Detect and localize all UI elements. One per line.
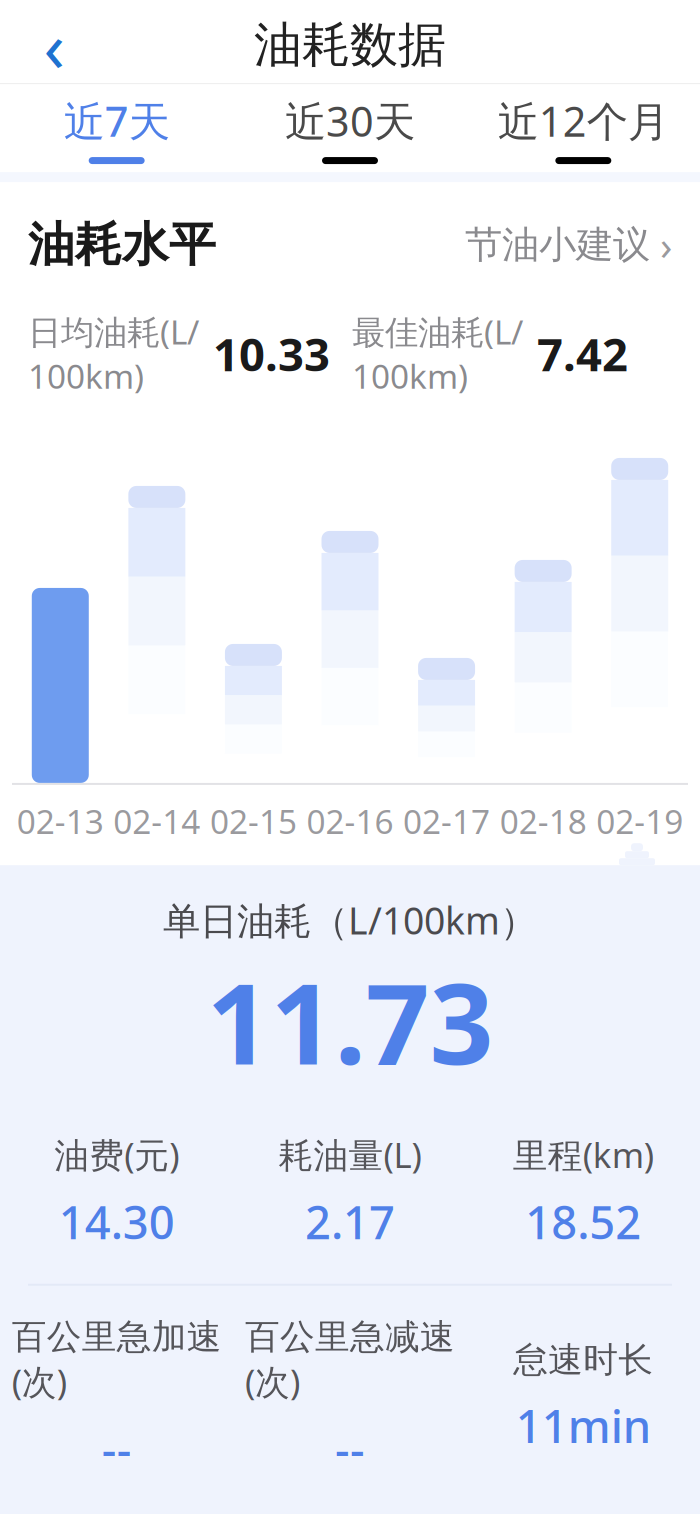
staticText: -- (335, 1418, 365, 1479)
staticText: -- (102, 1418, 132, 1479)
staticText: 11.73 (206, 947, 493, 1095)
staticText: 02-15 (210, 799, 297, 843)
staticText: 7.42 (537, 324, 628, 384)
staticText: 近7天 (64, 93, 170, 148)
button[interactable]: 近12个月 (467, 84, 700, 172)
staticText: 里程(km) (513, 1131, 654, 1177)
button[interactable]: 近30天 (233, 84, 467, 172)
staticText: 近12个月 (498, 93, 669, 148)
button[interactable]: 节油小建议 (465, 218, 672, 271)
staticText: 02-19 (596, 799, 683, 843)
staticText: 最佳油耗(L/100km) (352, 309, 523, 398)
staticText: 14.30 (59, 1191, 175, 1252)
staticText: 02-16 (306, 799, 393, 843)
staticText: 02-13 (17, 799, 104, 843)
staticText: 02-14 (113, 799, 200, 843)
staticText: 18.52 (525, 1191, 641, 1252)
staticText: 11min (516, 1395, 651, 1455)
staticText: 油耗水平 (28, 216, 216, 273)
staticText: 节油小建议 (465, 222, 650, 268)
staticText: 怠速时长 (513, 1339, 653, 1381)
staticText: 耗油量(L) (278, 1131, 421, 1177)
staticText: 单日油耗（L/100km） (163, 895, 537, 945)
button[interactable]: Back (14, 7, 94, 83)
staticText: 百公里急减速(次) (245, 1316, 455, 1404)
staticText: 02-17 (403, 799, 490, 843)
staticText: 10.33 (213, 324, 330, 384)
staticText: 日均油耗(L/100km) (28, 309, 199, 398)
staticText: 近30天 (285, 93, 415, 148)
staticText: 油费(元) (54, 1131, 179, 1177)
staticText: 油耗数据 (254, 16, 446, 75)
staticText: 百公里急加速(次) (12, 1316, 222, 1404)
staticText: ‹ (43, 0, 64, 91)
button[interactable]: 近7天 (0, 84, 233, 172)
staticText: 2.17 (305, 1191, 395, 1252)
staticText: › (660, 218, 672, 271)
staticText: 02-18 (500, 799, 587, 843)
